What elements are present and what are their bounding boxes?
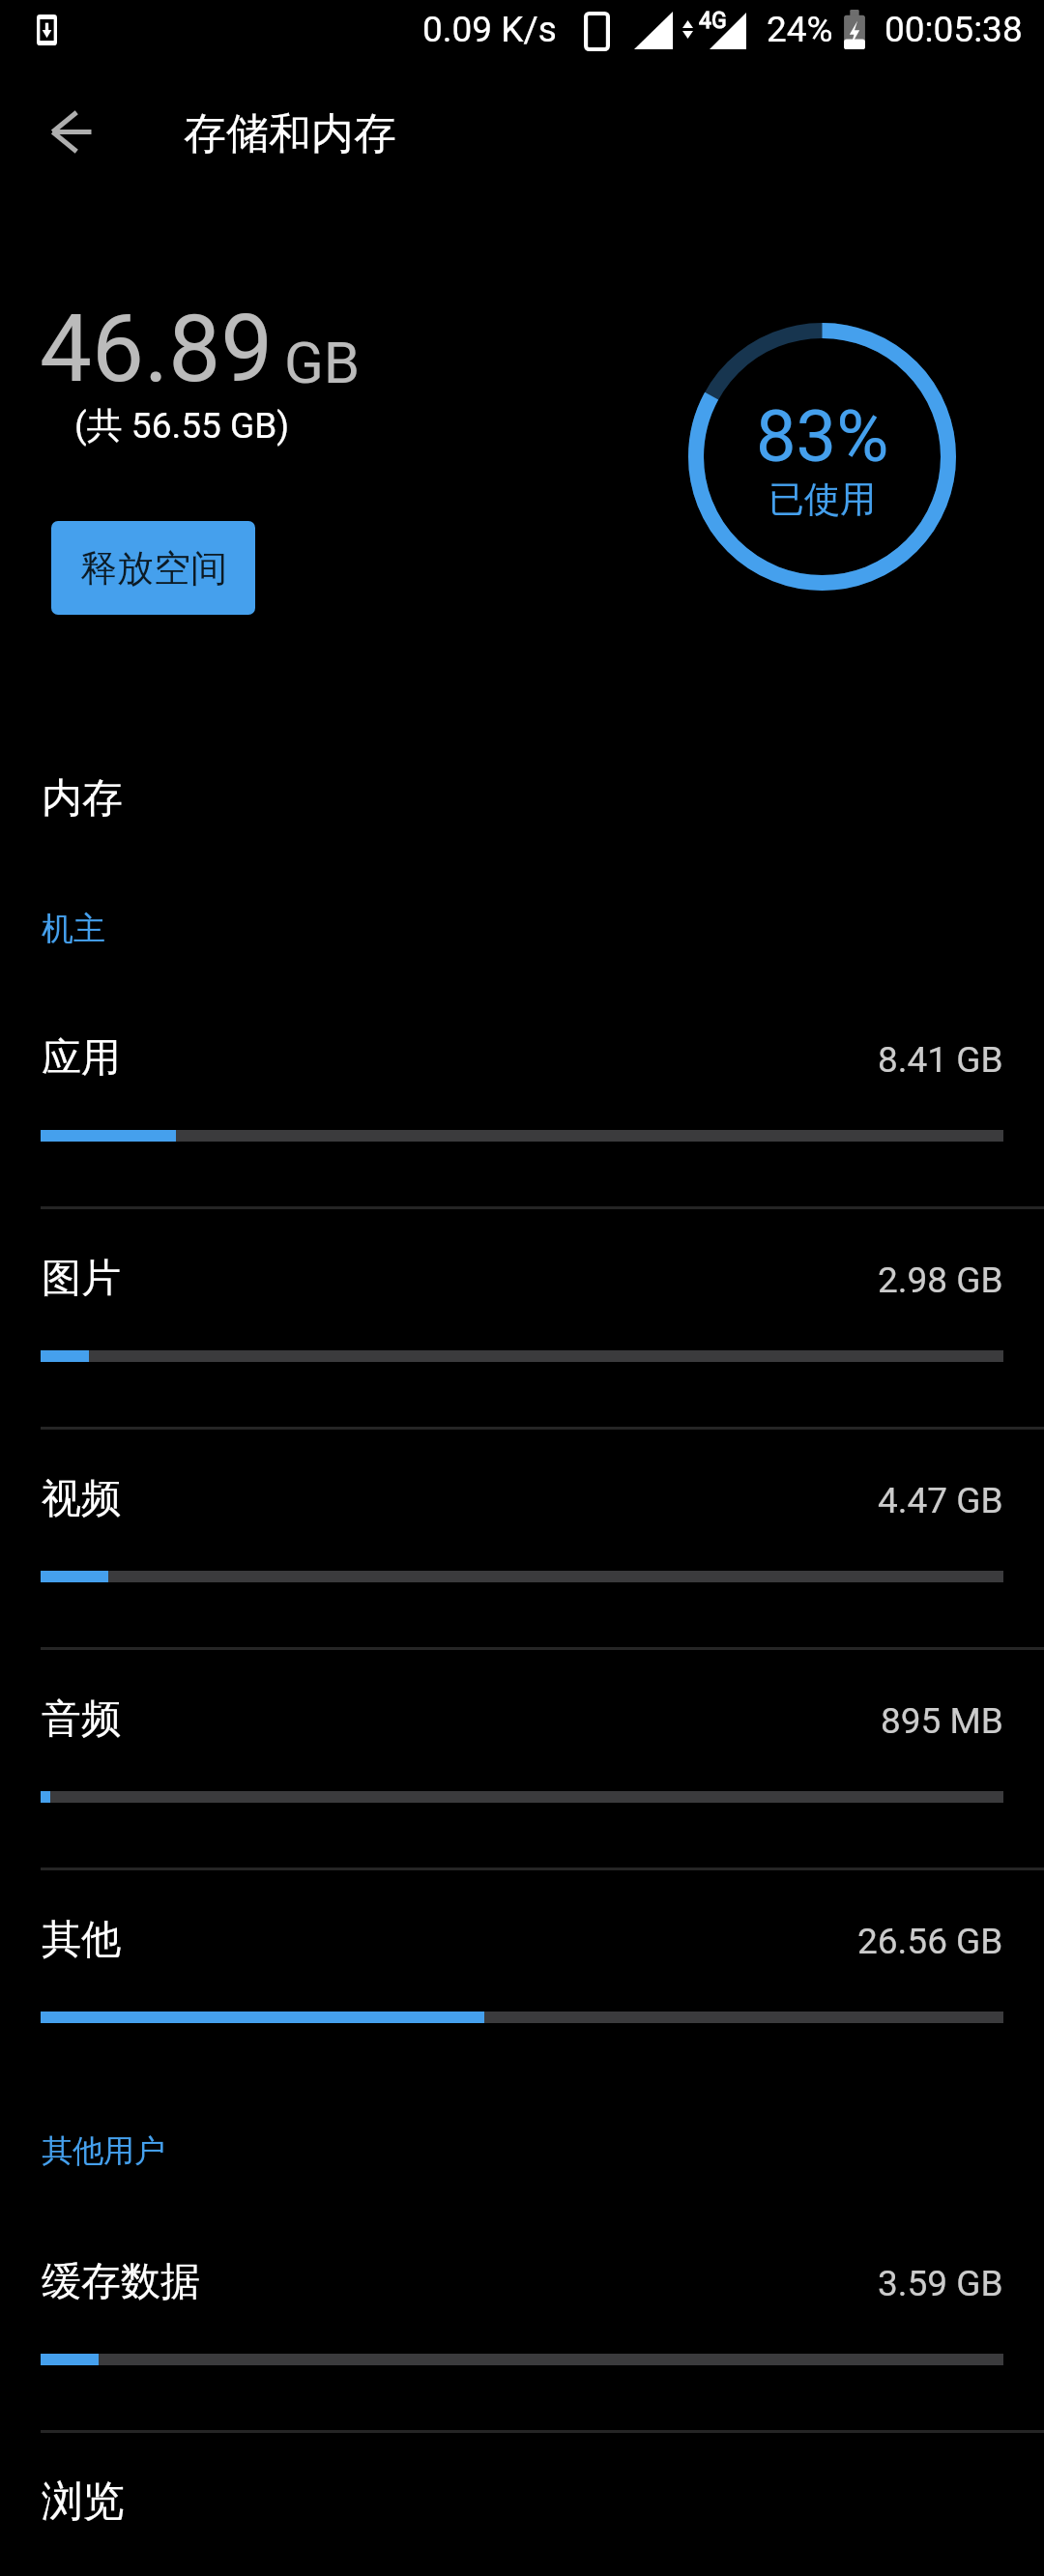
button[interactable] bbox=[0, 2432, 1044, 2576]
button[interactable] bbox=[0, 995, 1044, 1209]
staticText: 895 MB bbox=[881, 1700, 1003, 1742]
staticText: 应用 bbox=[42, 1033, 121, 1084]
staticText: 已使用 bbox=[768, 477, 876, 522]
staticText: 4.47 GB bbox=[878, 1480, 1003, 1521]
button[interactable] bbox=[0, 1876, 1044, 2091]
staticText: 24% bbox=[767, 9, 833, 50]
staticText: 其他用户 bbox=[42, 2131, 165, 2170]
button[interactable]: 返回 bbox=[19, 79, 124, 184]
button[interactable]: 释放空间 bbox=[51, 521, 255, 615]
button[interactable] bbox=[0, 1215, 1044, 1430]
staticText: 音频 bbox=[42, 1694, 121, 1745]
button[interactable] bbox=[0, 1435, 1044, 1650]
staticText: 00:05:38 bbox=[884, 9, 1023, 50]
staticText: (共 56.55 GB) bbox=[74, 403, 290, 449]
staticText: 46.89 bbox=[40, 295, 274, 404]
staticText: 视频 bbox=[42, 1474, 121, 1524]
staticText: 浏览 bbox=[42, 2475, 125, 2528]
staticText: 机主 bbox=[42, 909, 105, 949]
staticText: 4G bbox=[699, 8, 727, 34]
staticText: 2.98 GB bbox=[878, 1259, 1003, 1301]
staticText: 26.56 GB bbox=[857, 1921, 1003, 1962]
button[interactable] bbox=[0, 1656, 1044, 1870]
staticText: 缓存数据 bbox=[42, 2257, 200, 2307]
staticText: 释放空间 bbox=[80, 545, 227, 592]
staticText: 83% bbox=[756, 394, 889, 478]
button[interactable] bbox=[0, 2218, 1044, 2433]
staticText: 8.41 GB bbox=[878, 1039, 1003, 1081]
staticText: 内存 bbox=[42, 773, 123, 825]
staticText: 3.59 GB bbox=[878, 2263, 1003, 2304]
staticText: 存储和内存 bbox=[184, 107, 396, 160]
staticText: GB bbox=[284, 329, 361, 396]
staticText: 图片 bbox=[42, 1254, 121, 1304]
staticText: 0.09 K/s bbox=[422, 9, 557, 50]
staticText: 其他 bbox=[42, 1915, 121, 1965]
